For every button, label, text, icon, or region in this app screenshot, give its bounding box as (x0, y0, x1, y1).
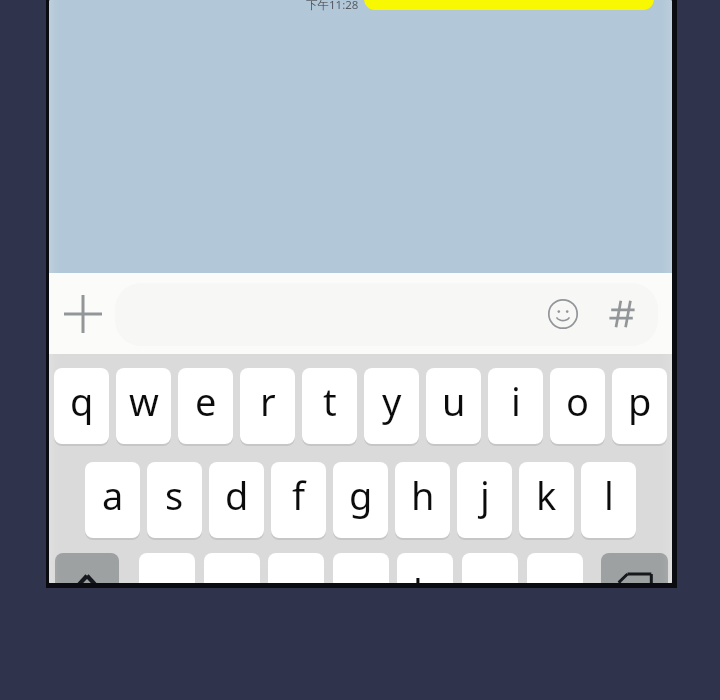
button[interactable]: t (302, 368, 357, 444)
staticText: p (628, 375, 652, 427)
staticText: w (129, 375, 159, 427)
staticText: k (536, 469, 557, 521)
button[interactable]: q (54, 368, 109, 444)
button[interactable] (115, 283, 658, 346)
button[interactable]: l (581, 462, 636, 538)
button[interactable]: Emoji (540, 291, 586, 337)
staticText: y (382, 375, 402, 427)
button[interactable]: u (426, 368, 481, 444)
staticText: f (292, 469, 306, 521)
staticText: l (604, 469, 614, 521)
button[interactable]: j (457, 462, 512, 538)
button[interactable]: a (85, 462, 140, 538)
button[interactable]: e (178, 368, 233, 444)
staticText: j (480, 469, 490, 521)
button[interactable]: p (612, 368, 667, 444)
staticText: a (102, 469, 124, 521)
button[interactable]: Hashtag (599, 291, 645, 337)
staticText: i (511, 375, 521, 427)
button[interactable]: z (139, 553, 195, 583)
button[interactable]: w (116, 368, 171, 444)
button[interactable]: x (204, 553, 260, 583)
button[interactable]: v (333, 553, 389, 583)
button[interactable]: b (397, 553, 453, 583)
staticText: d (225, 469, 249, 521)
staticText: g (349, 469, 373, 521)
staticText: b (413, 566, 437, 583)
button[interactable]: m (527, 553, 583, 583)
button[interactable]: Shift (55, 553, 119, 583)
staticText: h (411, 469, 435, 521)
button[interactable]: c (268, 553, 324, 583)
button[interactable]: Backspace (601, 553, 668, 583)
button[interactable]: y (364, 368, 419, 444)
staticText: 下午11:28 (306, 0, 359, 13)
staticText: s (165, 469, 184, 521)
button[interactable]: g (333, 462, 388, 538)
button[interactable]: r (240, 368, 295, 444)
staticText: q (70, 375, 94, 427)
button[interactable]: d (209, 462, 264, 538)
button[interactable]: k (519, 462, 574, 538)
staticText: o (566, 375, 589, 427)
button[interactable]: s (147, 462, 202, 538)
button[interactable]: f (271, 462, 326, 538)
staticText: r (260, 375, 276, 427)
button[interactable]: Add attachment (57, 288, 109, 340)
button[interactable] (364, 0, 654, 10)
button[interactable]: o (550, 368, 605, 444)
button[interactable]: h (395, 462, 450, 538)
button[interactable]: n (462, 553, 518, 583)
staticText: u (442, 375, 466, 427)
staticText: e (195, 375, 217, 427)
button[interactable]: i (488, 368, 543, 444)
staticText: t (323, 375, 337, 427)
